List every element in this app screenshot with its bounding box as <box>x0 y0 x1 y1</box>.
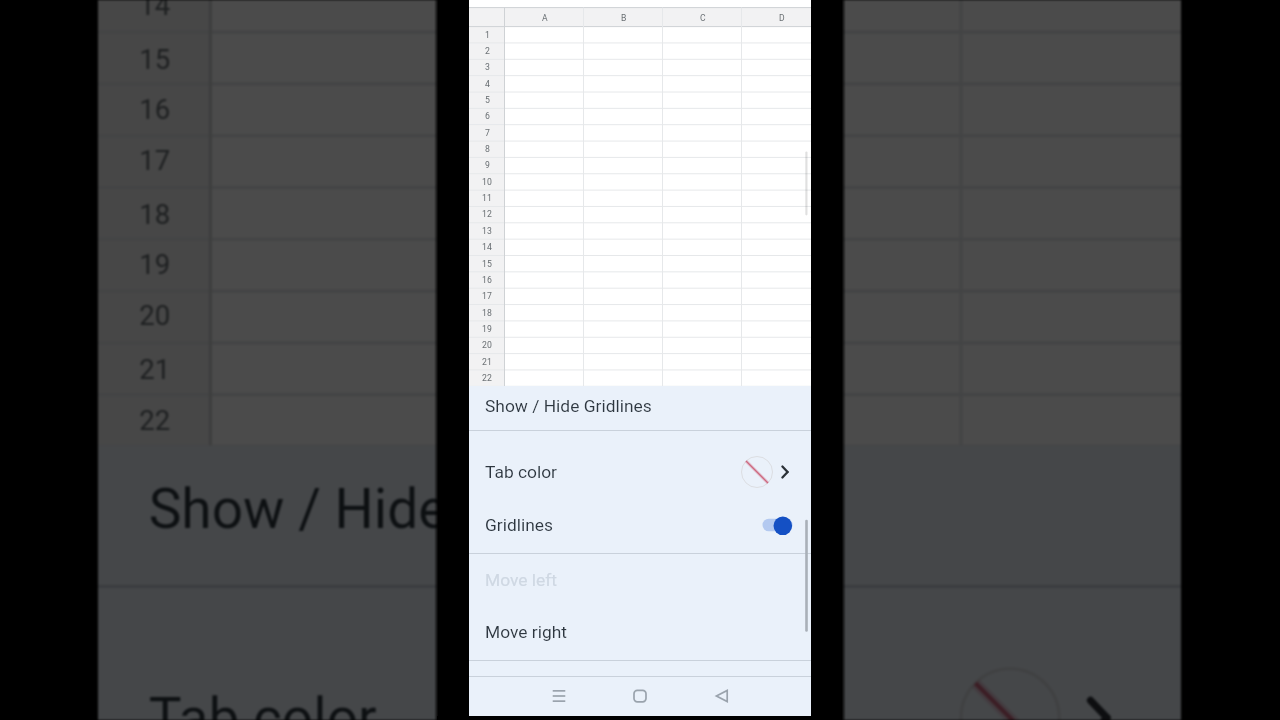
staticText: 2 <box>485 46 490 56</box>
staticText: 20 <box>482 340 492 350</box>
other: No colour <box>959 667 1061 720</box>
staticText: 15 <box>139 43 171 75</box>
staticText: 12 <box>482 209 492 219</box>
staticText: 21 <box>139 354 171 385</box>
staticText: 19 <box>482 324 492 334</box>
staticText: 8 <box>485 144 490 154</box>
staticText: Move left <box>485 570 558 590</box>
staticText: 22 <box>139 404 171 436</box>
button[interactable]: Move right <box>469 606 811 660</box>
staticText: 20 <box>139 300 171 331</box>
staticText: 16 <box>139 94 171 126</box>
other: No colour <box>741 456 773 488</box>
staticText: 22 <box>482 373 492 383</box>
staticText: 5 <box>485 95 490 105</box>
button[interactable]: Gridlines <box>469 497 811 553</box>
staticText: 17 <box>139 145 171 176</box>
staticText: 15 <box>482 259 492 269</box>
staticText: 19 <box>139 249 171 281</box>
staticText: 21 <box>482 357 492 367</box>
staticText: Tab color <box>485 462 558 482</box>
staticText: Show / Hide Gridlines <box>485 396 652 416</box>
staticText: Show / Hide Gridlines <box>149 477 678 540</box>
staticText: Move right <box>485 622 567 642</box>
staticText: 11 <box>482 193 492 203</box>
staticText: A <box>542 13 548 23</box>
staticText: 18 <box>482 308 492 318</box>
staticText: 10 <box>482 177 492 187</box>
button[interactable]: A <box>505 8 584 27</box>
button[interactable]: Show / Hide Gridlines <box>98 445 1181 585</box>
staticText: Tab color <box>149 686 380 720</box>
staticText: 3 <box>485 62 490 72</box>
staticText: 9 <box>485 160 490 170</box>
button[interactable]: Gridlines toggle <box>762 514 793 536</box>
staticText: B <box>621 13 627 23</box>
button[interactable]: Move left <box>469 554 811 606</box>
button[interactable]: Menu <box>541 678 577 714</box>
staticText: Gridlines <box>485 515 554 535</box>
staticText: 17 <box>482 291 492 301</box>
staticText: 1 <box>485 30 490 40</box>
button[interactable]: Back <box>704 678 740 714</box>
staticText: D <box>779 13 785 23</box>
staticText: 13 <box>482 226 492 236</box>
button[interactable]: B <box>584 8 663 27</box>
button[interactable]: Tab color <box>98 588 1181 720</box>
other: Open tab colour <box>778 465 792 479</box>
button[interactable]: D <box>742 8 811 27</box>
staticText: 14 <box>482 242 492 252</box>
button[interactable]: Home <box>622 678 658 714</box>
staticText: 7 <box>485 128 490 138</box>
staticText: 18 <box>139 198 171 230</box>
button[interactable]: Tab color <box>469 431 811 498</box>
button[interactable]: Show / Hide Gridlines <box>469 386 811 430</box>
staticText: 6 <box>485 111 490 121</box>
staticText: 4 <box>485 79 490 89</box>
other: Open tab colour <box>1077 696 1121 720</box>
staticText: C <box>700 13 706 23</box>
button[interactable]: C <box>663 8 742 27</box>
staticText: 14 <box>139 0 171 21</box>
staticText: 16 <box>482 275 492 285</box>
